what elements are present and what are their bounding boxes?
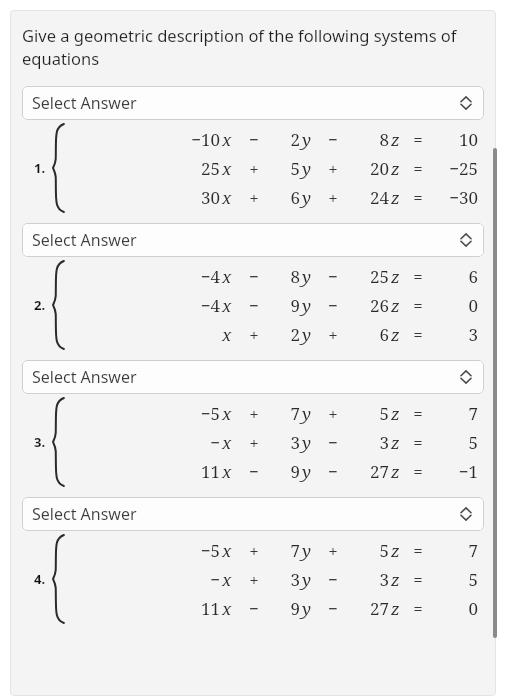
staticText: + (232, 539, 276, 562)
staticText: − (174, 431, 220, 454)
staticText: 3 (276, 568, 300, 591)
staticText: + (232, 323, 276, 346)
staticText: z (391, 431, 400, 454)
staticText: − (311, 128, 355, 151)
staticText: 7 (276, 402, 300, 425)
staticText: x (222, 323, 232, 346)
staticText: x (222, 568, 232, 591)
staticText: x (222, 597, 232, 620)
staticText: Select Answer (32, 366, 460, 388)
staticText: − (311, 265, 355, 288)
other: Open answer options (460, 95, 472, 111)
staticText: y (302, 265, 311, 288)
staticText: z (391, 186, 400, 209)
staticText: −5 (174, 402, 220, 425)
staticText: y (302, 186, 311, 209)
staticText: x (222, 128, 232, 151)
staticText: y (302, 539, 311, 562)
staticText: 2 (276, 323, 300, 346)
staticText: 27 (355, 460, 389, 483)
staticText: −25 (436, 157, 478, 180)
staticText: 8 (355, 128, 389, 151)
staticText: 30 (174, 186, 220, 209)
staticText: z (391, 294, 400, 317)
staticText: 1. (34, 159, 46, 177)
staticText: x (222, 431, 232, 454)
staticText: 2. (34, 296, 46, 314)
staticText: + (311, 539, 355, 562)
staticText: + (232, 157, 276, 180)
staticText: + (311, 186, 355, 209)
staticText: 5 (355, 539, 389, 562)
staticText: 5 (355, 402, 389, 425)
staticText: 24 (355, 186, 389, 209)
staticText: z (391, 568, 400, 591)
button[interactable]: Select Answer (22, 360, 484, 394)
staticText: y (302, 294, 311, 317)
staticText: −5 (174, 539, 220, 562)
staticText: = (400, 568, 436, 591)
staticText: y (302, 402, 311, 425)
staticText: z (391, 460, 400, 483)
staticText: 5 (436, 431, 478, 454)
staticText: 27 (355, 597, 389, 620)
button[interactable]: Select Answer (22, 223, 484, 257)
staticText: 6 (436, 265, 478, 288)
staticText: 3 (355, 431, 389, 454)
button[interactable]: Select Answer (22, 86, 484, 120)
staticText: −30 (436, 186, 478, 209)
staticText: y (302, 597, 311, 620)
staticText: 5 (276, 157, 300, 180)
staticText: Give a geometric description of the foll… (22, 24, 484, 70)
staticText: z (391, 539, 400, 562)
staticText: + (311, 402, 355, 425)
staticText: x (222, 265, 232, 288)
staticText: x (222, 294, 232, 317)
other: Open answer options (460, 369, 472, 385)
staticText: 0 (436, 597, 478, 620)
staticText: z (391, 128, 400, 151)
staticText: − (311, 597, 355, 620)
staticText: x (222, 157, 232, 180)
staticText: 6 (276, 186, 300, 209)
staticText: + (232, 402, 276, 425)
staticText: − (232, 597, 276, 620)
button[interactable]: Select Answer (22, 497, 484, 531)
staticText: x (222, 460, 232, 483)
staticText: = (400, 186, 436, 209)
staticText: − (311, 460, 355, 483)
staticText: −4 (174, 294, 220, 317)
staticText: − (232, 265, 276, 288)
staticText: 9 (276, 294, 300, 317)
staticText: x (222, 186, 232, 209)
staticText: 3. (34, 433, 46, 451)
staticText: y (302, 460, 311, 483)
staticText: = (400, 323, 436, 346)
staticText: 6 (355, 323, 389, 346)
staticText: 26 (355, 294, 389, 317)
staticText: 3 (436, 323, 478, 346)
staticText: − (311, 431, 355, 454)
staticText: 3 (276, 431, 300, 454)
staticText: z (391, 157, 400, 180)
staticText: −10 (174, 128, 220, 151)
staticText: y (302, 568, 311, 591)
staticText: Select Answer (32, 503, 460, 525)
staticText: − (311, 294, 355, 317)
staticText: + (232, 431, 276, 454)
staticText: −1 (436, 460, 478, 483)
staticText: Select Answer (32, 92, 460, 114)
staticText: 7 (436, 402, 478, 425)
staticText: z (391, 402, 400, 425)
staticText: 7 (436, 539, 478, 562)
staticText: 0 (436, 294, 478, 317)
staticText: 8 (276, 265, 300, 288)
staticText: − (232, 294, 276, 317)
staticText: = (400, 460, 436, 483)
staticText: y (302, 323, 311, 346)
staticText: = (400, 128, 436, 151)
staticText: −4 (174, 265, 220, 288)
staticText: + (232, 568, 276, 591)
staticText: 10 (436, 128, 478, 151)
